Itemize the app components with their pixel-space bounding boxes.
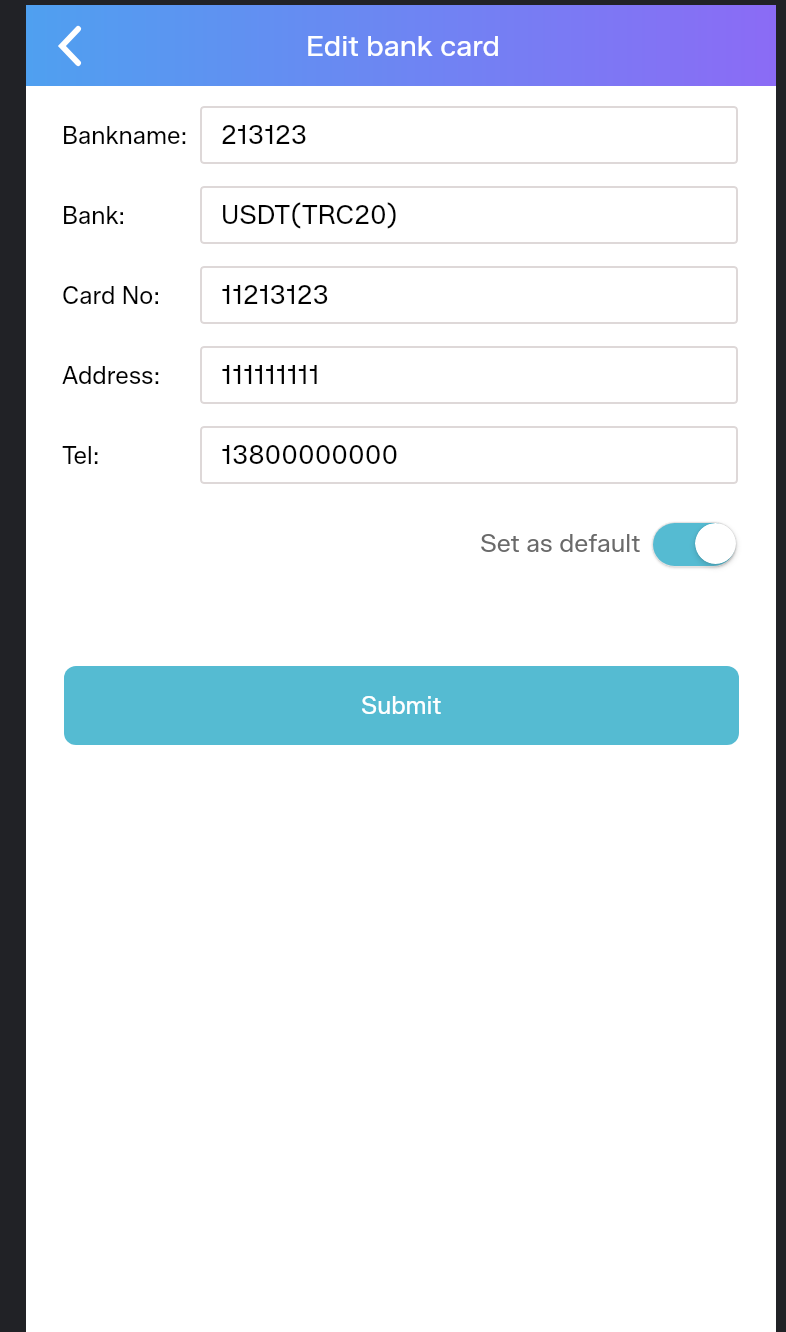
- button[interactable]: Submit: [64, 666, 739, 745]
- staticText: Tel:: [62, 441, 100, 470]
- staticText: USDT(TRC20): [221, 199, 398, 231]
- staticText: 13800000000: [221, 439, 399, 471]
- staticText: 111111111: [221, 359, 320, 391]
- button[interactable]: 111111111: [200, 346, 738, 404]
- staticText: Submit: [361, 691, 442, 720]
- staticText: Set as default: [480, 528, 641, 558]
- staticText: Bankname:: [62, 121, 188, 150]
- staticText: 11213123: [221, 279, 329, 311]
- button[interactable]: Set as default: [650, 519, 740, 569]
- button[interactable]: Back: [26, 5, 110, 86]
- staticText: Edit bank card: [306, 28, 500, 63]
- staticText: Address:: [62, 361, 161, 390]
- button[interactable]: 13800000000: [200, 426, 738, 484]
- staticText: Card No:: [62, 281, 160, 310]
- button[interactable]: USDT(TRC20): [200, 186, 738, 244]
- button[interactable]: 213123: [200, 106, 738, 164]
- staticText: 213123: [221, 119, 307, 151]
- staticText: Bank:: [62, 201, 126, 230]
- button[interactable]: Set as default: [480, 521, 645, 565]
- button[interactable]: 11213123: [200, 266, 738, 324]
